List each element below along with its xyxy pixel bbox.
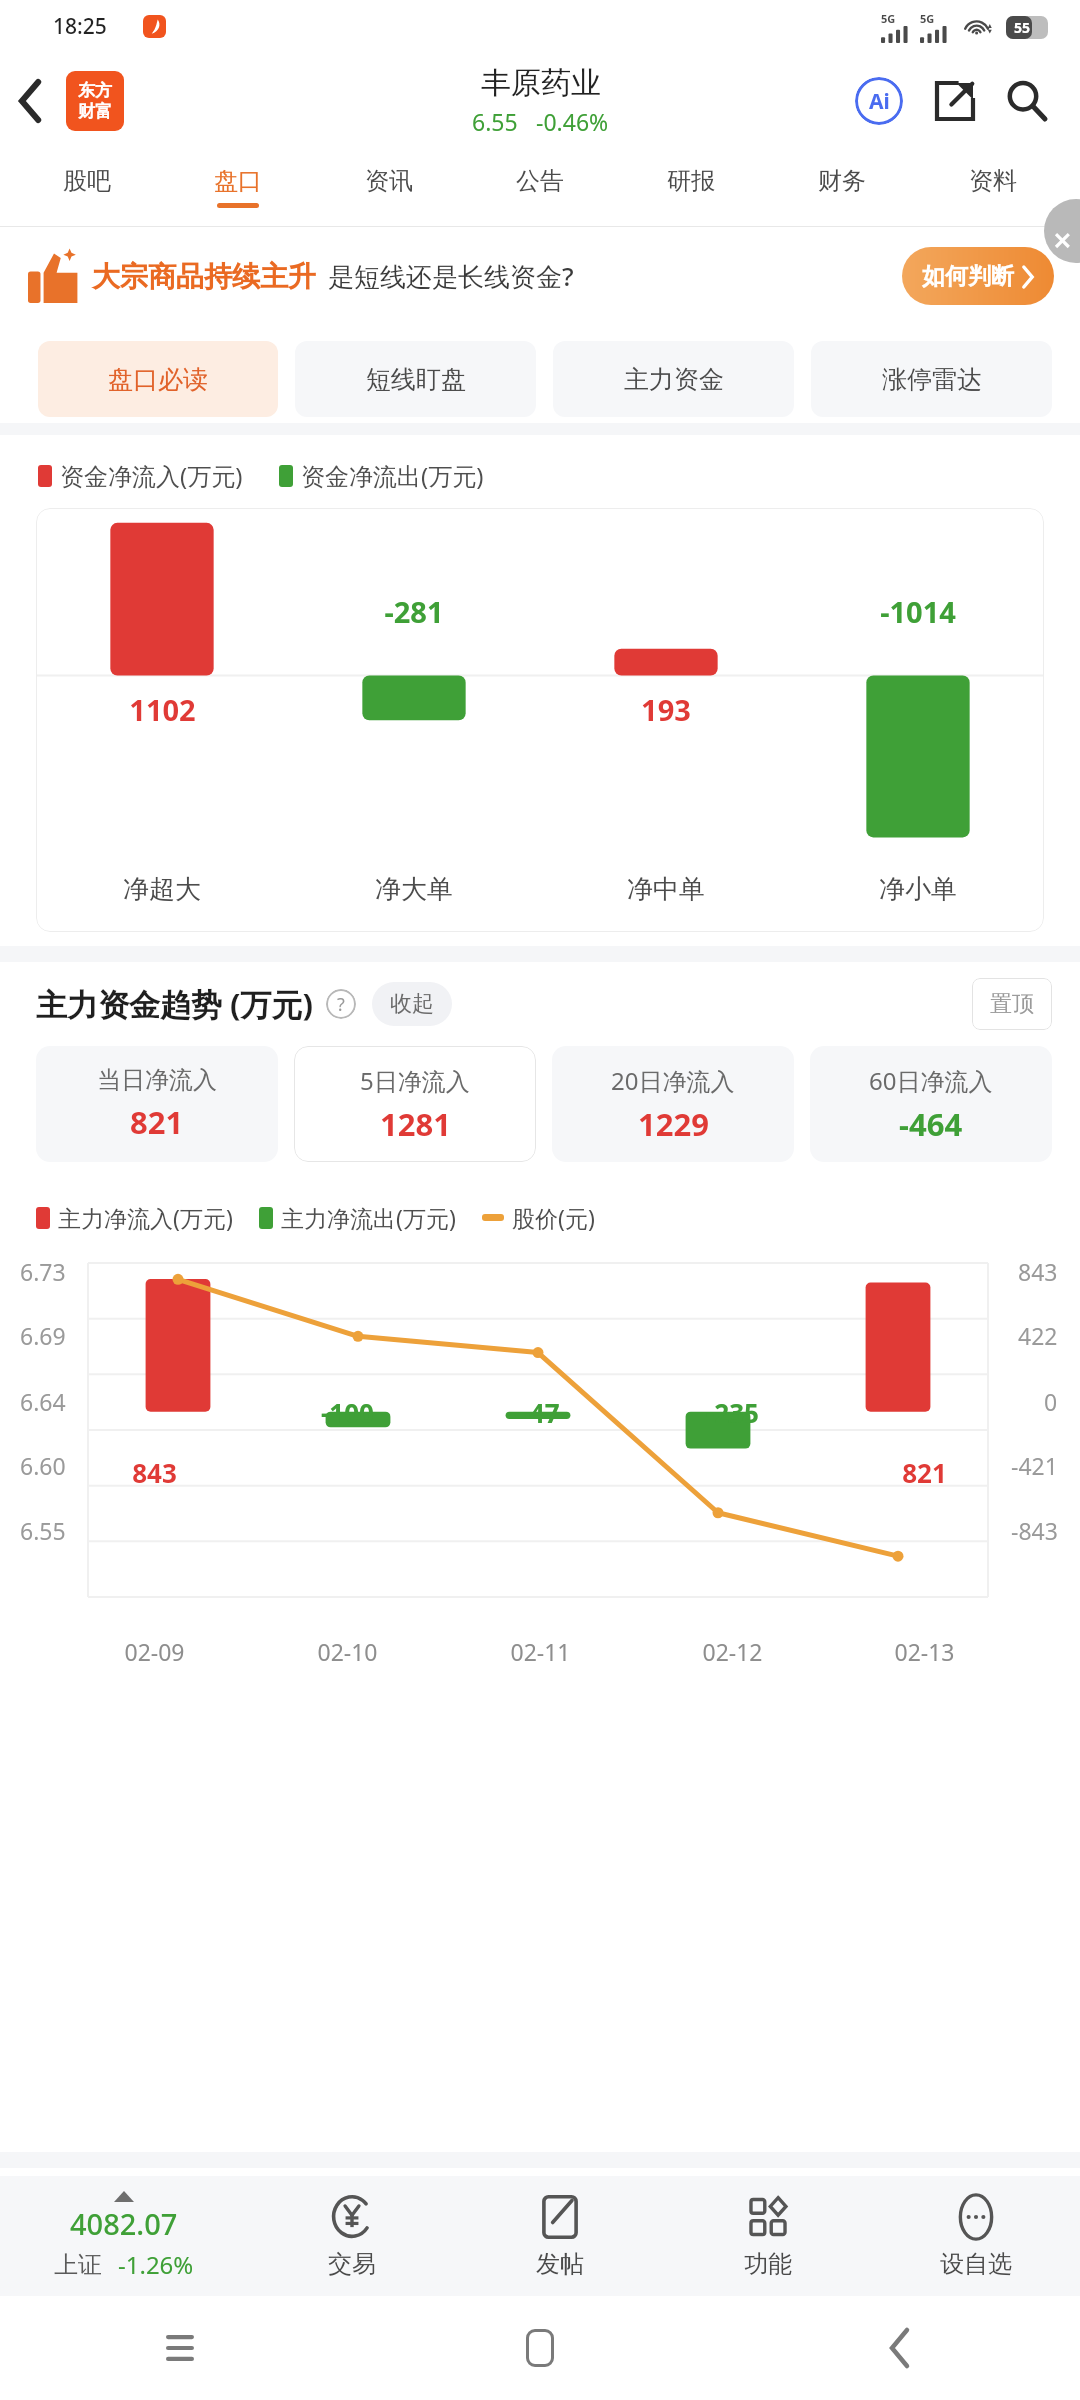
button[interactable]: 60日净流入	[810, 1046, 1052, 1162]
staticText: -281	[384, 592, 444, 631]
staticText: 丰原药业	[481, 64, 601, 102]
button[interactable]: 5日净流入	[294, 1046, 536, 1162]
staticText: -421	[1011, 1450, 1058, 1481]
button[interactable]: 主力资金	[553, 341, 794, 417]
button[interactable]: 当日净流入	[36, 1046, 278, 1162]
staticText: 5G	[920, 11, 935, 26]
staticText: 55	[1014, 18, 1031, 37]
button[interactable]: 盘口	[162, 148, 313, 226]
staticText: 资金净流出(万元)	[301, 459, 484, 492]
button[interactable]: 置顶	[972, 978, 1052, 1030]
button[interactable]: 4082.07	[0, 2176, 248, 2296]
button[interactable]: 涨停雷达	[811, 341, 1052, 417]
staticText: 财务	[818, 166, 866, 196]
staticText: 843	[1018, 1256, 1058, 1287]
button[interactable]: 东方	[66, 71, 124, 131]
button[interactable]: 短线盯盘	[295, 341, 536, 417]
staticText: 主力净流出(万元)	[281, 1202, 456, 1233]
staticText: -1014	[880, 592, 956, 631]
staticText: 资金净流入(万元)	[60, 459, 243, 492]
button[interactable]: 20日净流入	[552, 1046, 794, 1162]
staticText: 0	[1044, 1386, 1058, 1417]
staticText: 6.73	[20, 1256, 66, 1287]
staticText: 6.69	[20, 1320, 66, 1351]
staticText: 短线盯盘	[366, 364, 466, 395]
staticText: 6.55	[20, 1515, 66, 1546]
button[interactable]: 大宗商品持续主升	[0, 227, 1080, 325]
staticText: 821	[130, 1101, 184, 1143]
staticText: 盘口必读	[108, 364, 208, 395]
staticText: 涨停雷达	[882, 364, 982, 395]
button[interactable]: 公告	[464, 148, 615, 226]
staticText: 净中单	[627, 873, 705, 906]
button[interactable]: Help	[326, 989, 356, 1019]
button[interactable]: 研报	[615, 148, 766, 226]
button[interactable]: Search	[998, 72, 1056, 130]
staticText: 02-13	[894, 1636, 955, 1667]
staticText: 净大单	[375, 873, 453, 906]
staticText: 盘口	[214, 166, 262, 196]
staticText: 净小单	[879, 873, 957, 906]
staticText: 1281	[380, 1103, 451, 1145]
button[interactable]: 财务	[766, 148, 917, 226]
staticText: -47	[521, 1395, 560, 1430]
staticText: 422	[1018, 1320, 1058, 1351]
button[interactable]: Share	[926, 72, 984, 130]
staticText: 193	[641, 690, 691, 729]
button[interactable]: Back	[720, 2296, 1080, 2400]
button[interactable]: 资讯	[313, 148, 464, 226]
staticText: 资料	[969, 166, 1017, 196]
button[interactable]: 股吧	[12, 148, 162, 226]
staticText: 20日净流入	[611, 1064, 735, 1097]
staticText: 上证	[54, 2250, 102, 2280]
staticText: 843	[132, 1455, 177, 1490]
staticText: 是短线还是长线资金?	[328, 258, 574, 294]
staticText: ?	[337, 992, 345, 1017]
staticText: 大宗商品持续主升	[92, 259, 316, 294]
button[interactable]: 交易	[248, 2176, 456, 2296]
button[interactable]: Recents	[0, 2296, 360, 2400]
staticText: 4082.07	[70, 2204, 178, 2243]
staticText: 5日净流入	[360, 1064, 470, 1097]
staticText: 东方	[78, 80, 112, 101]
button[interactable]: 功能	[664, 2176, 872, 2296]
staticText: 6.60	[20, 1450, 66, 1481]
staticText: 设自选	[940, 2249, 1012, 2279]
button[interactable]: 盘口必读	[38, 341, 278, 417]
button[interactable]: Back	[0, 70, 62, 132]
staticText: 6.55	[472, 106, 518, 137]
staticText: -235	[706, 1395, 759, 1430]
staticText: 1229	[638, 1103, 709, 1145]
button[interactable]: AI assistant	[850, 72, 908, 130]
staticText: 股吧	[63, 166, 111, 196]
staticText: 财富	[78, 101, 112, 122]
button[interactable]: 如何判断	[902, 247, 1054, 305]
staticText: 当日净流入	[97, 1065, 217, 1095]
staticText: 主力资金	[624, 364, 724, 395]
staticText: 净超大	[123, 873, 201, 906]
staticText: 研报	[667, 166, 715, 196]
staticText: -100	[321, 1395, 374, 1430]
staticText: 18:25	[53, 12, 107, 41]
button[interactable]: 设自选	[872, 2176, 1080, 2296]
staticText: 02-10	[317, 1636, 378, 1667]
staticText: 主力净流入(万元)	[58, 1202, 233, 1233]
staticText: 股价(元)	[512, 1202, 595, 1233]
button[interactable]: 收起	[372, 982, 452, 1026]
staticText: 资讯	[365, 166, 413, 196]
button[interactable]: 发帖	[456, 2176, 664, 2296]
staticText: -0.46%	[536, 106, 609, 137]
staticText: 821	[902, 1455, 947, 1490]
staticText: -1.26%	[118, 2248, 194, 2281]
staticText: 如何判断	[922, 262, 1014, 291]
staticText: 发帖	[536, 2249, 584, 2279]
button[interactable]: 资料	[917, 148, 1068, 226]
staticText: 60日净流入	[869, 1064, 993, 1097]
staticText: 02-09	[124, 1636, 185, 1667]
button[interactable]: Home	[360, 2296, 720, 2400]
button[interactable]: Close ad	[1040, 227, 1080, 267]
staticText: 5G	[881, 11, 896, 26]
staticText: 6.64	[20, 1386, 66, 1417]
staticText: 02-12	[702, 1636, 763, 1667]
staticText: Ai	[869, 87, 890, 116]
